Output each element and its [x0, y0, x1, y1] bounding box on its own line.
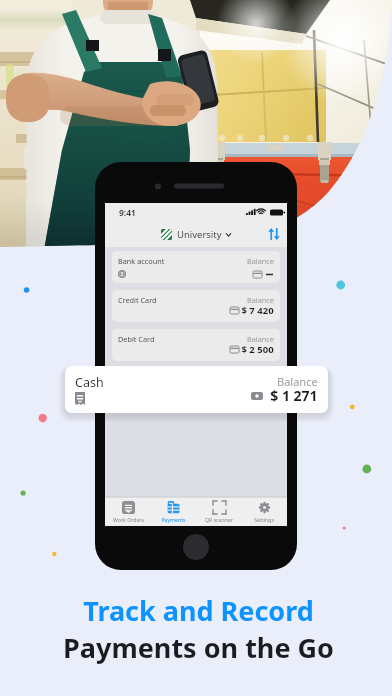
staticText: Balance: [247, 334, 274, 344]
staticText: Track and Record: [83, 592, 314, 629]
staticText: Settings: [254, 516, 274, 523]
button[interactable]: Cash: [65, 366, 328, 413]
staticText: University: [172, 228, 225, 241]
staticText: $ 7 420: [239, 304, 274, 317]
staticText: Balance: [247, 256, 274, 266]
staticText: Bank account: [118, 256, 165, 266]
staticText: Balance: [247, 295, 274, 305]
staticText: Cash: [75, 374, 104, 391]
staticText: Balance: [277, 374, 318, 389]
staticText: QR scanner: [205, 516, 233, 523]
button[interactable]: Debit Card: [112, 329, 280, 361]
staticText: Payments on the Go: [63, 629, 334, 666]
button[interactable]: Work Orders: [106, 497, 150, 526]
staticText: Credit Card: [118, 295, 157, 305]
staticText: Debit Card: [118, 334, 155, 344]
button[interactable]: Credit Card: [112, 290, 280, 322]
button[interactable]: Settings: [242, 497, 286, 526]
staticText: Work Orders: [113, 516, 144, 523]
button[interactable]: Bank account: [112, 251, 280, 283]
staticText: $ 2 500: [239, 343, 274, 356]
staticText: $ 1 271: [263, 386, 318, 405]
button[interactable]: Payments: [151, 497, 195, 526]
staticText: 9:41: [119, 207, 136, 219]
staticText: Payments: [161, 516, 186, 523]
button[interactable]: QR scanner: [197, 497, 241, 526]
